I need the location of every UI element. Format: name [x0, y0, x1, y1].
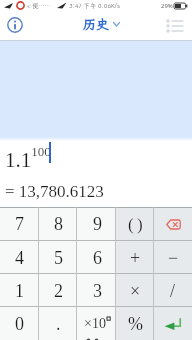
staticText: 7: [15, 214, 24, 234]
button[interactable]: ( ): [116, 207, 154, 241]
staticText: ×10: [84, 316, 106, 332]
staticText: 6: [93, 248, 102, 268]
button[interactable]: +: [116, 241, 154, 274]
staticText: %: [128, 314, 143, 334]
staticText: 历史: [83, 16, 110, 33]
button[interactable]: ×: [116, 274, 154, 307]
button[interactable]: [5, 15, 25, 35]
staticText: 4: [15, 248, 24, 268]
button[interactable]: 5: [39, 241, 78, 274]
staticText: 9: [93, 214, 102, 234]
button[interactable]: %: [116, 307, 154, 340]
button[interactable]: 6: [78, 241, 116, 274]
staticText: 8: [54, 214, 63, 234]
button[interactable]: 历史: [83, 16, 120, 33]
staticText: 0: [15, 314, 24, 334]
staticText: = 13,780.6123: [5, 182, 104, 201]
staticText: 29%: [161, 2, 173, 10]
staticText: 3:47 下午 0.06K/s: [69, 2, 120, 10]
staticText: −: [168, 248, 179, 268]
staticText: ( ): [128, 215, 143, 234]
button[interactable]: 3: [78, 274, 116, 307]
staticText: .: [56, 314, 61, 334]
staticText: 1: [15, 281, 24, 301]
staticText: ×: [130, 281, 141, 301]
button[interactable]: −: [154, 241, 192, 274]
staticText: +: [130, 248, 141, 268]
staticText: /: [170, 281, 176, 301]
staticText: 2: [54, 281, 63, 301]
staticText: ‹ 便……: [27, 2, 51, 10]
button[interactable]: [154, 207, 192, 241]
button[interactable]: 4: [0, 241, 39, 274]
staticText: 5: [54, 248, 63, 268]
staticText: 3: [93, 281, 102, 301]
button[interactable]: /: [154, 274, 192, 307]
button[interactable]: ×10: [78, 307, 116, 340]
button[interactable]: 2: [39, 274, 78, 307]
button[interactable]: 1: [0, 274, 39, 307]
button[interactable]: [154, 307, 192, 340]
button[interactable]: 7: [0, 207, 39, 241]
button[interactable]: 0: [0, 307, 39, 340]
button[interactable]: .: [39, 307, 78, 340]
button[interactable]: [164, 16, 188, 36]
button[interactable]: 8: [39, 207, 78, 241]
button[interactable]: 9: [78, 207, 116, 241]
staticText: 1.1100: [5, 144, 51, 172]
